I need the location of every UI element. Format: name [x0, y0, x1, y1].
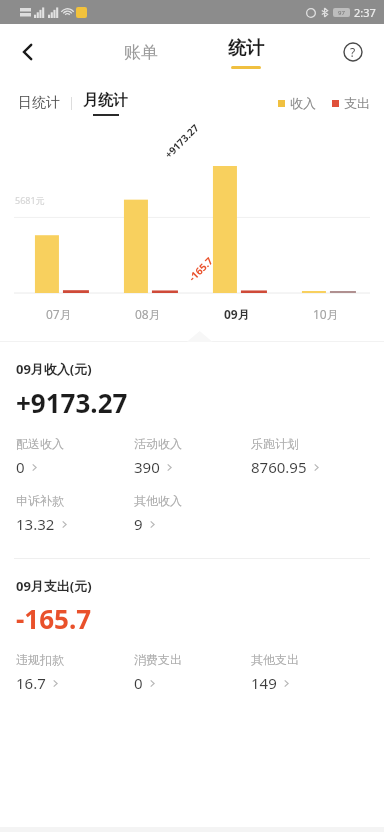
staticText: 07月 — [46, 306, 72, 322]
staticText: 消费支出 — [134, 652, 182, 667]
button[interactable]: 09月 — [192, 306, 281, 322]
staticText: 统计 — [228, 37, 264, 60]
button[interactable]: 其他支出 — [251, 652, 368, 693]
staticText: 97 — [338, 9, 345, 17]
staticText: 配送收入 — [16, 436, 64, 451]
button[interactable]: 活动收入 — [134, 436, 251, 477]
staticText: 9 — [134, 514, 143, 534]
button[interactable]: 申诉补款 — [16, 493, 134, 534]
staticText: 活动收入 — [134, 436, 182, 451]
staticText: 日统计 — [18, 94, 60, 112]
staticText: 09月支出(元) — [16, 577, 92, 595]
staticText: 收入 — [290, 95, 316, 111]
button[interactable]: 其他收入 — [134, 493, 251, 534]
staticText: +9173.27 — [16, 385, 128, 420]
staticText: 8760.95 — [251, 457, 307, 477]
staticText: 13.32 — [16, 514, 55, 534]
button[interactable]: 08月 — [103, 306, 192, 322]
staticText: +9173.27 — [161, 121, 202, 161]
button[interactable]: 账单 — [106, 32, 176, 73]
staticText: 10月 — [313, 306, 339, 322]
button[interactable]: 日统计 — [16, 88, 62, 118]
button[interactable]: 配送收入 — [16, 436, 134, 477]
staticText: 0 — [134, 673, 143, 693]
staticText: 09月收入(元) — [16, 360, 92, 378]
button[interactable]: 消费支出 — [134, 652, 251, 693]
button[interactable]: 乐跑计划 — [251, 436, 368, 477]
staticText: 支出 — [344, 95, 370, 111]
button[interactable]: Help — [332, 31, 374, 73]
staticText: ? — [350, 44, 356, 60]
staticText: 月统计 — [83, 91, 128, 110]
staticText: 2:37 — [354, 5, 376, 20]
staticText: 其他收入 — [134, 493, 182, 508]
staticText: 申诉补款 — [16, 493, 64, 508]
button[interactable]: 统计 — [214, 33, 278, 73]
staticText: 账单 — [124, 42, 158, 63]
staticText: 16.7 — [16, 673, 46, 693]
staticText: 390 — [134, 457, 160, 477]
button[interactable]: 月统计 — [81, 91, 130, 116]
staticText: 149 — [251, 673, 277, 693]
staticText: 其他支出 — [251, 652, 299, 667]
staticText: 违规扣款 — [16, 652, 64, 667]
staticText: -165.7 — [185, 254, 216, 284]
staticText: 0 — [16, 457, 25, 477]
button[interactable]: 07月 — [14, 306, 103, 322]
staticText: 09月 — [224, 306, 250, 322]
button[interactable]: 10月 — [281, 306, 370, 322]
staticText: 乐跑计划 — [251, 436, 299, 451]
button[interactable]: 违规扣款 — [16, 652, 134, 693]
staticText: -165.7 — [16, 601, 92, 636]
button[interactable]: Back — [6, 30, 50, 74]
staticText: 08月 — [135, 306, 161, 322]
staticText: 5681元 — [15, 194, 45, 206]
